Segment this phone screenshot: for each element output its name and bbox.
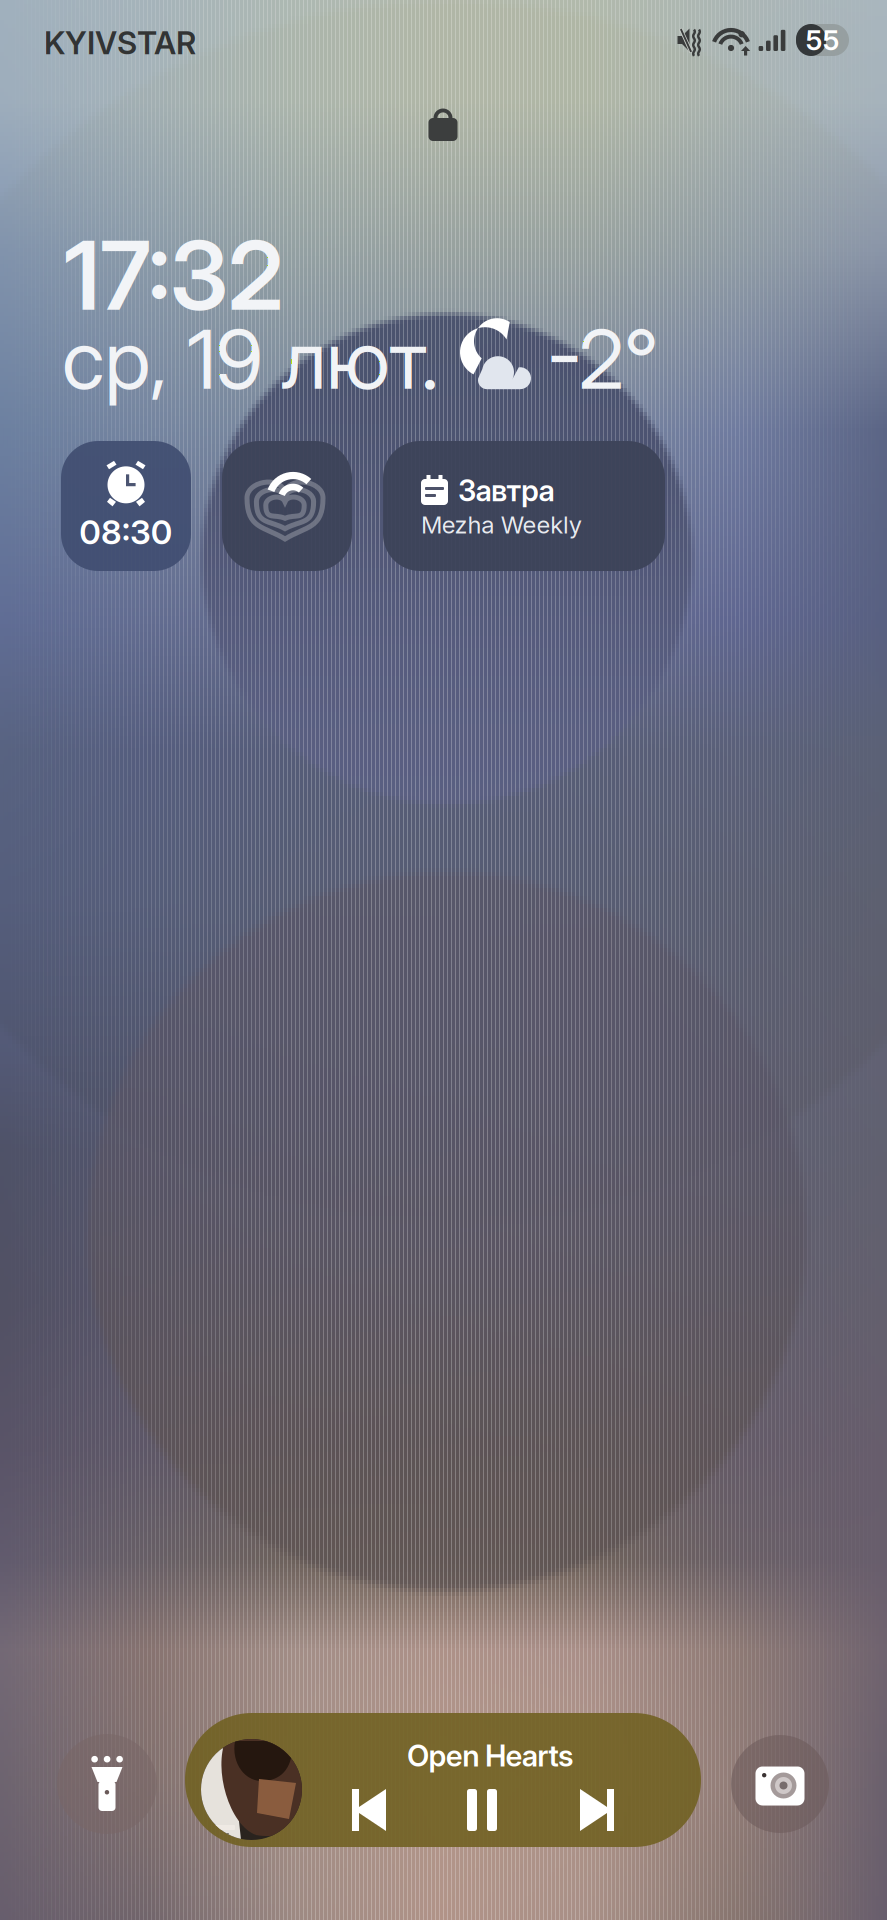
staticText: Завтра bbox=[458, 473, 554, 508]
button[interactable]: Завтра bbox=[383, 441, 665, 571]
button[interactable]: Camera bbox=[731, 1735, 829, 1833]
staticText: Open Hearts bbox=[407, 1738, 574, 1773]
staticText: 08:30 bbox=[79, 512, 173, 552]
staticText: 55 bbox=[805, 23, 839, 57]
button[interactable]: Flashlight bbox=[57, 1734, 157, 1834]
button[interactable]: Next track bbox=[580, 1789, 614, 1831]
staticText: Mezha Weekly bbox=[421, 510, 582, 539]
staticText: ср, 19 лют. bbox=[62, 310, 439, 408]
staticText: KYIVSTAR bbox=[44, 24, 196, 62]
button[interactable]: Pause bbox=[467, 1789, 497, 1831]
button[interactable]: Fitness bbox=[222, 441, 352, 571]
staticText: 17:32 bbox=[64, 218, 283, 332]
staticText: -2° bbox=[547, 310, 658, 408]
button[interactable]: 08:30 bbox=[61, 441, 191, 571]
button[interactable]: Previous track bbox=[352, 1789, 386, 1831]
